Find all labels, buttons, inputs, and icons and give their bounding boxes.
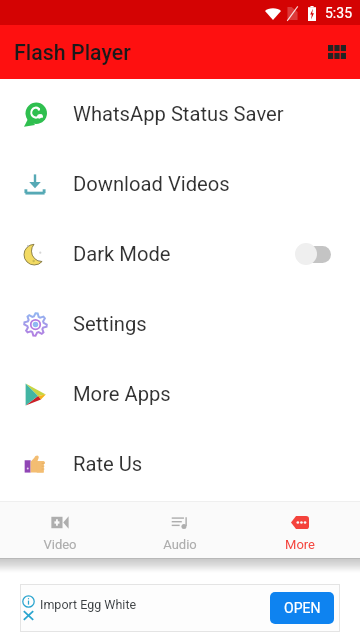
- staticText: Settings: [73, 312, 147, 336]
- button[interactable]: Audio: [120, 502, 240, 558]
- staticText: WhatsApp Status Saver: [73, 102, 284, 126]
- button[interactable]: OPEN: [270, 592, 334, 624]
- button[interactable]: WhatsApp Status Saver: [0, 79, 360, 149]
- staticText: More: [285, 537, 315, 552]
- button[interactable]: Download Videos: [0, 149, 360, 219]
- staticText: More Apps: [73, 382, 171, 406]
- staticText: Import Egg White: [40, 597, 137, 612]
- button[interactable]: Close ad: [22, 609, 35, 622]
- staticText: 5:35: [325, 5, 352, 21]
- button[interactable]: Dark Mode: [0, 219, 360, 289]
- staticText: Dark Mode: [73, 242, 171, 266]
- staticText: Flash Player: [14, 40, 131, 65]
- button[interactable]: Dark mode toggle: [295, 240, 335, 268]
- button[interactable]: Video: [0, 502, 120, 558]
- staticText: Video: [43, 537, 77, 552]
- staticText: Rate Us: [73, 452, 143, 476]
- staticText: Download Videos: [73, 172, 230, 196]
- button[interactable]: Apps grid: [317, 32, 357, 72]
- button[interactable]: More: [240, 502, 360, 558]
- staticText: Audio: [163, 537, 197, 552]
- staticText: OPEN: [284, 600, 321, 616]
- button[interactable]: More Apps: [0, 359, 360, 429]
- button[interactable]: Settings: [0, 289, 360, 359]
- other: Ad info: [22, 595, 35, 608]
- button[interactable]: Rate Us: [0, 429, 360, 499]
